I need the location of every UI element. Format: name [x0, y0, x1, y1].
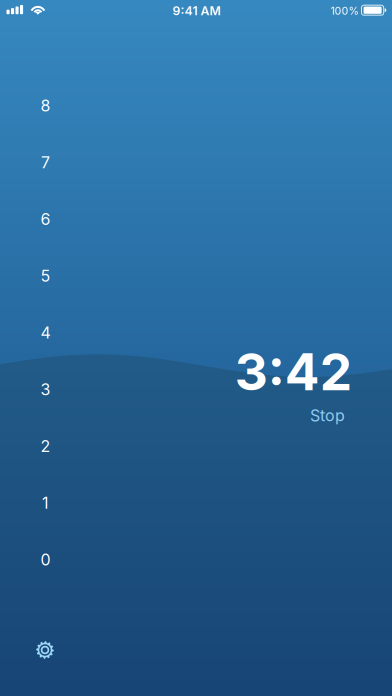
- staticText: 7: [41, 153, 50, 172]
- staticText: 100%: [331, 5, 359, 17]
- staticText: 2: [40, 436, 50, 456]
- staticText: 4: [40, 323, 50, 342]
- staticText: 0: [40, 550, 50, 569]
- button[interactable]: Settings: [23, 628, 67, 672]
- staticText: 9:41 AM: [172, 3, 220, 18]
- staticText: Stop: [310, 406, 345, 425]
- staticText: 1: [42, 493, 49, 513]
- staticText: 3: [40, 380, 50, 399]
- staticText: 3:42: [235, 340, 352, 402]
- staticText: 8: [40, 96, 50, 115]
- button[interactable]: Stop: [302, 401, 353, 430]
- staticText: 6: [40, 209, 50, 229]
- staticText: 5: [40, 266, 50, 286]
